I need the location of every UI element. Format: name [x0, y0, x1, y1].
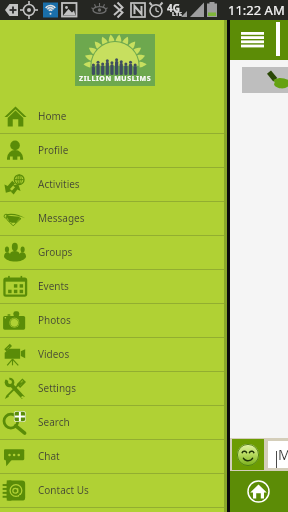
- button[interactable]: Open navigation drawer: [239, 30, 265, 50]
- staticText: Contact Us: [38, 483, 89, 497]
- staticText: LTE: [172, 10, 183, 18]
- button[interactable]: Videos: [0, 338, 226, 372]
- staticText: Profile: [38, 143, 69, 157]
- button[interactable]: Contact Us: [0, 474, 226, 508]
- staticText: Videos: [38, 347, 70, 361]
- staticText: 4G: [167, 1, 180, 15]
- button[interactable]: Photos: [0, 304, 226, 338]
- button[interactable]: Messages: [0, 202, 226, 236]
- staticText: Chat: [38, 449, 60, 463]
- button[interactable]: Settings: [0, 372, 226, 406]
- staticText: 11:22 AM: [228, 1, 285, 19]
- button[interactable]: Profile: [0, 134, 226, 168]
- staticText: M: [278, 445, 288, 464]
- button[interactable]: Events: [0, 270, 226, 304]
- staticText: Messages: [38, 211, 85, 225]
- staticText: ZILLION MUSLIMS: [79, 74, 152, 84]
- staticText: Photos: [38, 313, 71, 327]
- button[interactable]: Home: [247, 480, 270, 503]
- staticText: Activities: [38, 177, 80, 191]
- button[interactable]: Search: [0, 406, 226, 440]
- staticText: Events: [38, 279, 69, 293]
- staticText: Search: [38, 415, 70, 429]
- button[interactable]: Emoji: [232, 439, 264, 470]
- button[interactable]: Activities: [0, 168, 226, 202]
- button[interactable]: Groups: [0, 236, 226, 270]
- button[interactable]: M: [268, 441, 288, 468]
- staticText: Groups: [38, 245, 73, 259]
- staticText: Settings: [38, 381, 77, 395]
- button[interactable]: Home: [0, 100, 226, 134]
- staticText: Home: [38, 109, 67, 123]
- button[interactable]: Chat: [0, 440, 226, 474]
